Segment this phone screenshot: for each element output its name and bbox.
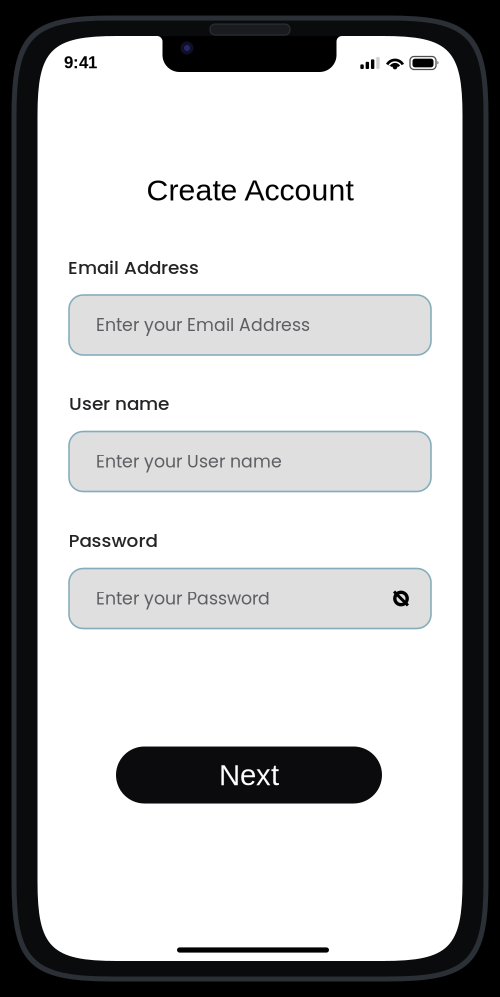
staticText: Create Account	[146, 173, 353, 207]
staticText: Email Address	[68, 255, 199, 280]
staticText: Password	[68, 528, 157, 553]
button[interactable]: Show password	[393, 590, 409, 607]
staticText: User name	[69, 391, 169, 416]
staticText: 9:41	[64, 53, 97, 72]
staticText: Enter your Password	[96, 586, 270, 611]
staticText: Enter your Email Address	[96, 313, 310, 337]
button[interactable]: Next	[116, 746, 382, 803]
staticText: Enter your User name	[96, 449, 282, 474]
staticText: Next	[219, 759, 279, 791]
